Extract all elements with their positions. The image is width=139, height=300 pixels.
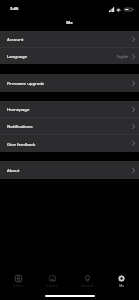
button[interactable]: Account bbox=[0, 31, 139, 47]
staticText: Give feedback bbox=[7, 141, 36, 147]
staticText: Me bbox=[119, 284, 124, 288]
button[interactable]: About bbox=[0, 161, 139, 179]
button[interactable]: Discover tab bbox=[70, 275, 104, 288]
button[interactable]: Notifications bbox=[0, 118, 139, 134]
staticText: Device bbox=[13, 284, 23, 288]
staticText: Firmware upgrade bbox=[7, 80, 45, 86]
staticText: Account bbox=[7, 36, 24, 42]
button[interactable]: Firmware upgrade bbox=[0, 74, 139, 92]
staticText: Homepage bbox=[7, 106, 30, 112]
staticText: Language bbox=[7, 53, 28, 59]
button[interactable]: Device tab bbox=[1, 275, 35, 288]
button[interactable]: Explore tab bbox=[35, 275, 69, 288]
staticText: Me bbox=[66, 20, 73, 26]
staticText: 3:46 bbox=[10, 6, 19, 12]
staticText: Notifications bbox=[7, 123, 33, 129]
button[interactable]: Homepage bbox=[0, 101, 139, 117]
staticText: Explore bbox=[46, 284, 58, 288]
button[interactable]: Me tab bbox=[104, 275, 138, 288]
button[interactable]: Language bbox=[0, 48, 139, 64]
staticText: About bbox=[7, 167, 20, 173]
staticText: Discover bbox=[81, 284, 94, 288]
staticText: English bbox=[117, 54, 129, 58]
button[interactable]: Give feedback bbox=[0, 135, 139, 152]
